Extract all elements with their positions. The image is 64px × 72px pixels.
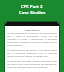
staticText: Case Studies bbox=[19, 10, 46, 16]
staticText: You are employed as a driver by a haulag… bbox=[7, 32, 57, 47]
button[interactable]: Case study toolbar bbox=[5, 22, 59, 26]
staticText: You must plan the route carefully and co… bbox=[7, 60, 57, 69]
staticText: The vehicle you will be driving is a rig… bbox=[7, 49, 57, 58]
staticText: CPC Part 2 bbox=[21, 4, 43, 10]
staticText: Case Study 1 bbox=[25, 28, 40, 31]
